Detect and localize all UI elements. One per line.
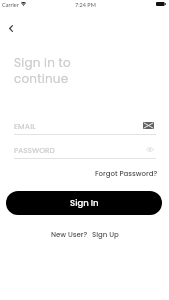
staticText: EMAIL (14, 121, 36, 132)
button[interactable]: Back (1, 18, 21, 38)
staticText: Sign in to continue (14, 54, 71, 87)
button[interactable]: Sign Up (92, 230, 119, 240)
button[interactable]: Show password (146, 145, 154, 154)
button[interactable]: Forgot Password? (93, 166, 160, 182)
staticText: New User? (51, 230, 88, 240)
button[interactable]: Email (143, 122, 154, 129)
staticText: Forgot Password? (95, 169, 158, 179)
staticText: PASSWORD (14, 145, 55, 155)
staticText: Carrier (2, 2, 19, 9)
button[interactable]: Sign In (6, 191, 162, 215)
staticText: Sign Up (92, 230, 119, 240)
staticText: 7:24 PM (75, 2, 96, 9)
staticText: Sign In (70, 197, 99, 209)
